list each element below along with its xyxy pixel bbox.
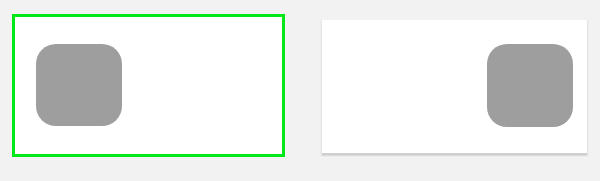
other: Layout preview thumbnail: [487, 44, 573, 127]
button[interactable]: Layout preview thumbnail: [322, 20, 587, 153]
button[interactable]: Layout preview thumbnail: [12, 14, 285, 157]
other: Layout preview thumbnail: [36, 44, 122, 126]
